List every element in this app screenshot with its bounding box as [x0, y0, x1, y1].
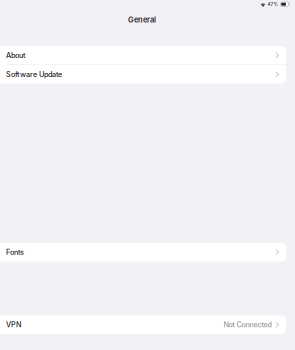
staticText: About — [6, 51, 25, 60]
staticText: Software Update — [6, 70, 62, 79]
staticText: Fonts — [6, 248, 24, 257]
button[interactable]: Fonts — [0, 243, 286, 261]
button[interactable]: VPN — [0, 315, 286, 334]
button[interactable]: Software Update — [0, 65, 286, 83]
staticText: VPN — [6, 320, 21, 329]
staticText: General — [128, 15, 156, 24]
staticText: Not Connected — [223, 320, 271, 329]
staticText: 47% — [268, 1, 279, 7]
button[interactable]: About — [0, 46, 286, 64]
